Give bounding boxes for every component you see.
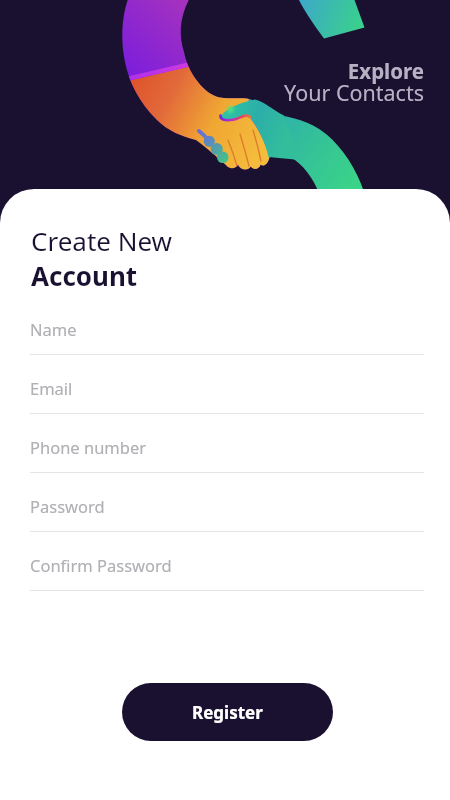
button[interactable]: Confirm Password	[0, 532, 450, 591]
staticText: Create New	[31, 223, 173, 258]
staticText: Confirm Password	[30, 554, 172, 576]
staticText: Your Contacts	[284, 78, 424, 107]
button[interactable]: Phone number	[0, 414, 450, 473]
button[interactable]: Register	[122, 683, 333, 741]
button[interactable]: Name	[0, 296, 450, 355]
staticText: Explore	[347, 57, 424, 85]
staticText: Account	[31, 258, 138, 293]
staticText: Email	[30, 377, 73, 399]
staticText: Register	[192, 701, 263, 724]
staticText: Phone number	[30, 436, 147, 458]
staticText: Password	[30, 495, 105, 517]
button[interactable]: Email	[0, 355, 450, 414]
button[interactable]: Password	[0, 473, 450, 532]
staticText: Name	[30, 318, 77, 340]
